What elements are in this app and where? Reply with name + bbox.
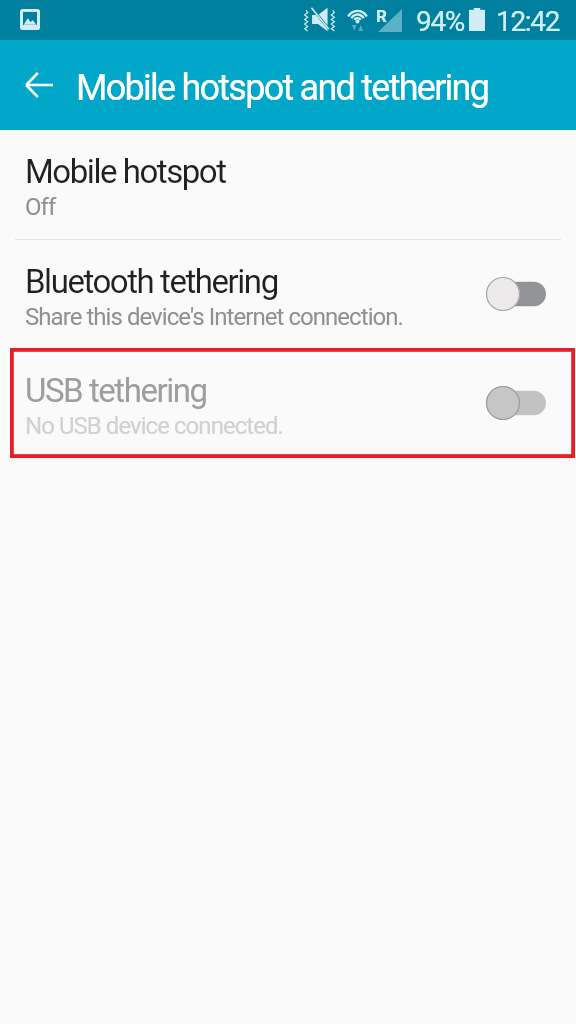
- staticText: Off: [25, 193, 56, 221]
- staticText: 12:42: [496, 5, 560, 38]
- button[interactable]: USB tethering: [0, 349, 576, 458]
- staticText: Mobile hotspot and tethering: [76, 67, 489, 109]
- staticText: Bluetooth tethering: [25, 262, 278, 301]
- staticText: No USB device connected.: [25, 412, 283, 440]
- staticText: Mobile hotspot: [25, 152, 226, 191]
- button[interactable]: Bluetooth tethering: [0, 240, 576, 349]
- staticText: 94%: [416, 5, 465, 38]
- staticText: Share this device's Internet connection.: [25, 303, 403, 331]
- button[interactable]: Turn on Bluetooth tethering: [486, 274, 546, 314]
- button[interactable]: Turn on USB tethering: [486, 383, 546, 423]
- staticText: R: [376, 6, 387, 26]
- button[interactable]: Mobile hotspot: [0, 130, 576, 239]
- button[interactable]: Navigate up: [12, 58, 66, 112]
- staticText: USB tethering: [25, 371, 207, 410]
